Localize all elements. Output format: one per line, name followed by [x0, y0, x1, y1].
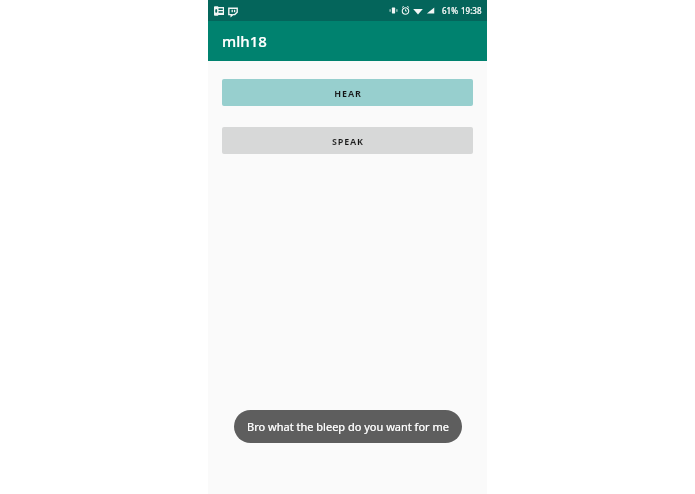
staticText: 19:38	[461, 5, 482, 16]
button[interactable]: Bro what the bleep do you want for me	[234, 410, 462, 443]
staticText: Bro what the bleep do you want for me	[247, 419, 449, 434]
staticText: SPEAK	[332, 135, 364, 147]
button[interactable]: HEAR	[222, 79, 473, 106]
staticText: HEAR	[334, 87, 362, 99]
staticText: 61%	[442, 5, 458, 16]
staticText: mlh18	[222, 31, 267, 51]
button[interactable]: SPEAK	[222, 127, 473, 154]
